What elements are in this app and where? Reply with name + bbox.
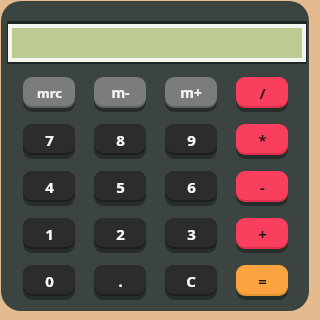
button[interactable]: 0 [23,265,75,300]
button[interactable]: minus [236,171,288,206]
staticText: / [259,83,266,103]
staticText: 4 [45,177,54,197]
staticText: = [258,271,267,291]
staticText: 7 [45,130,54,150]
button[interactable]: equals [236,265,288,300]
staticText: 6 [187,177,196,197]
staticText: C [186,271,196,291]
button[interactable]: decimal point [94,265,146,300]
staticText: 2 [116,224,125,244]
button[interactable]: clear [165,265,217,300]
button[interactable]: memory minus [94,77,146,112]
button[interactable]: 6 [165,171,217,206]
button[interactable]: 1 [23,218,75,253]
button[interactable]: memory plus [165,77,217,112]
button[interactable]: plus [236,218,288,253]
button[interactable]: divide [236,77,288,112]
button[interactable]: 3 [165,218,217,253]
button[interactable]: 9 [165,124,217,159]
staticText: 1 [45,224,54,244]
button[interactable]: multiply [236,124,288,159]
staticText: 5 [116,177,125,197]
staticText: 0 [45,271,54,291]
button[interactable]: 7 [23,124,75,159]
button[interactable]: memory recall [23,77,75,112]
button[interactable]: 4 [23,171,75,206]
staticText: m+ [180,83,202,102]
staticText: 9 [187,130,196,150]
button[interactable]: 2 [94,218,146,253]
staticText: + [258,224,267,244]
button[interactable]: 5 [94,171,146,206]
staticText: mrc [37,84,62,102]
staticText: - [260,177,265,197]
button[interactable]: 8 [94,124,146,159]
staticText: . [118,271,123,291]
staticText: 3 [187,224,196,244]
staticText: * [258,130,267,150]
staticText: m- [111,83,130,102]
staticText: 8 [116,130,125,150]
